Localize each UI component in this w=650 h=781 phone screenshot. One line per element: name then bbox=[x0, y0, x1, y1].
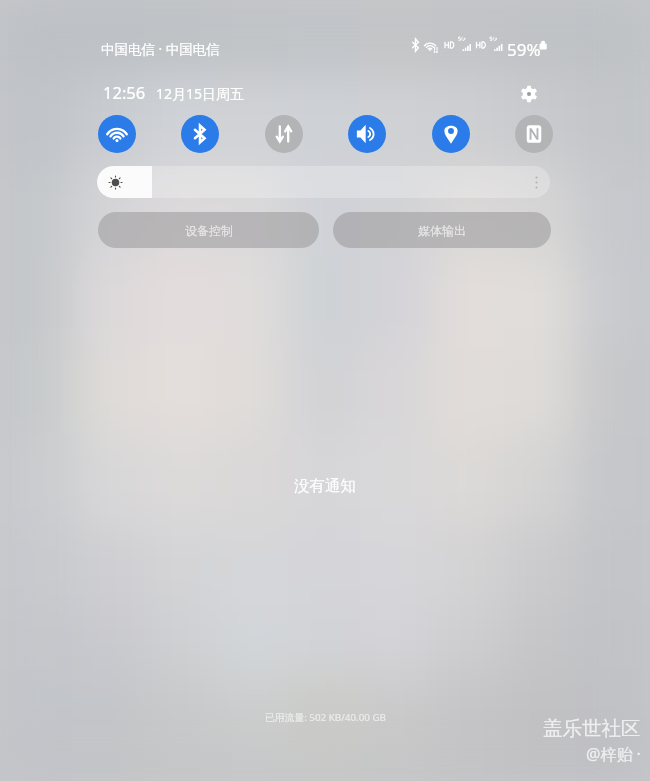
staticText: 12月15日周五 bbox=[156, 84, 245, 103]
staticText: 盖乐世社区 bbox=[543, 716, 641, 741]
button[interactable]: Wi-Fi bbox=[98, 115, 136, 153]
button[interactable]: Bluetooth bbox=[181, 115, 219, 153]
button[interactable]: Brightness bbox=[97, 166, 550, 198]
button[interactable]: NFC bbox=[515, 115, 553, 153]
button[interactable]: 媒体输出 bbox=[333, 212, 551, 248]
button[interactable]: Mobile data bbox=[265, 115, 303, 153]
staticText: @梓贻 · bbox=[586, 743, 641, 765]
staticText: 中国电信 · 中国电信 bbox=[101, 40, 220, 58]
button[interactable]: Settings bbox=[515, 80, 543, 108]
staticText: 59% bbox=[507, 38, 541, 61]
staticText: 已用流量: 502 KB/40.00 GB bbox=[265, 711, 386, 724]
button[interactable]: Sound bbox=[348, 115, 386, 153]
button[interactable]: Location bbox=[432, 115, 470, 153]
staticText: 媒体输出 bbox=[418, 223, 466, 238]
staticText: 没有通知 bbox=[294, 476, 356, 496]
button[interactable]: 设备控制 bbox=[98, 212, 319, 248]
staticText: 设备控制 bbox=[185, 223, 233, 238]
staticText: 12:56 bbox=[103, 81, 146, 103]
